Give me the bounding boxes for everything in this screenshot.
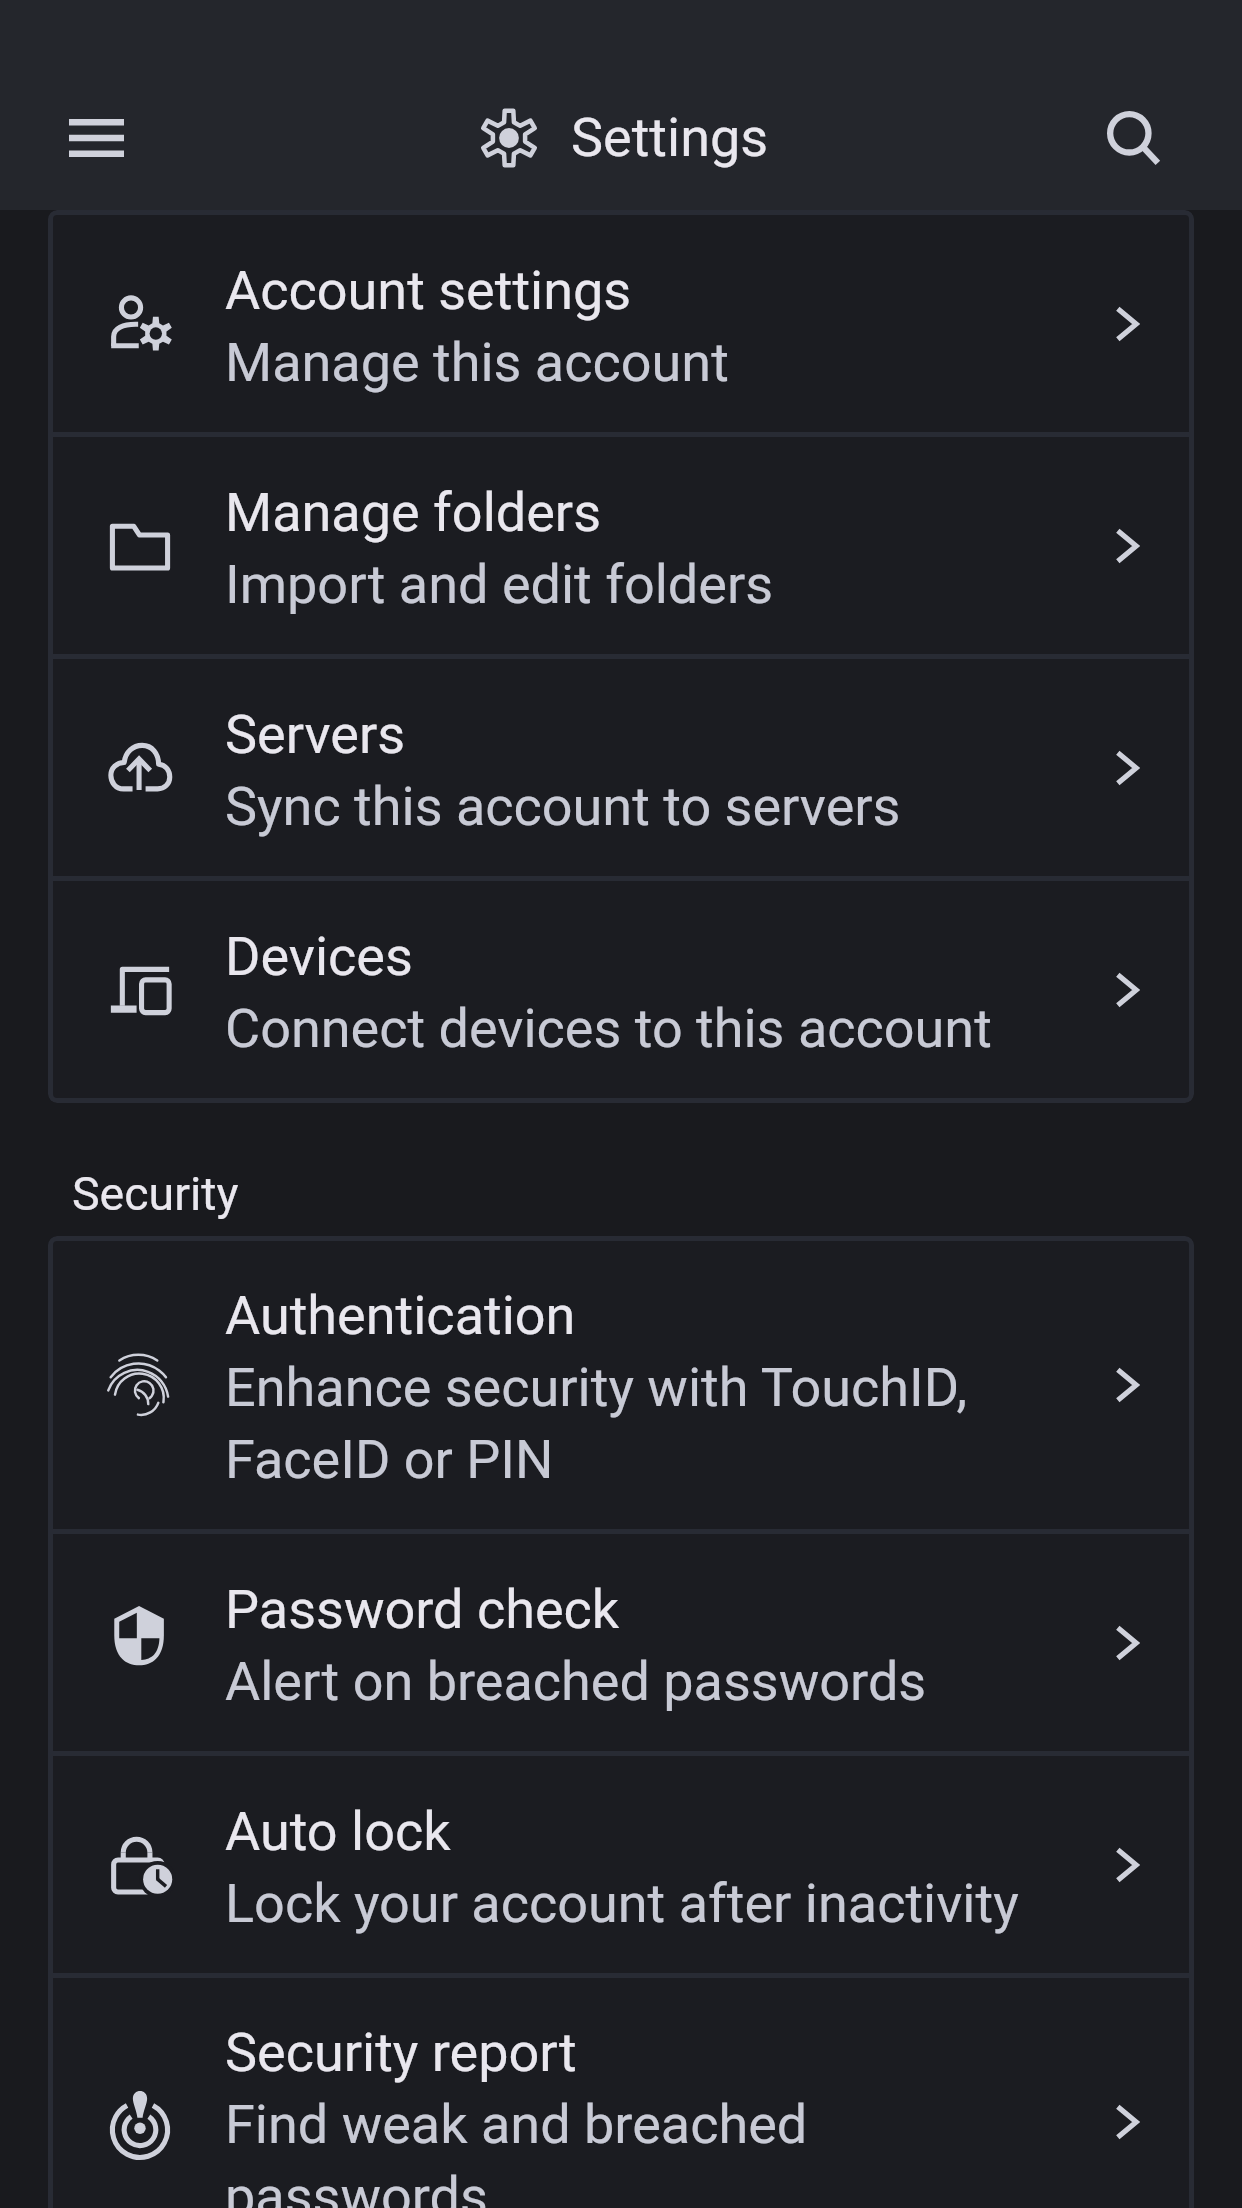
staticText: Password check [225,1571,620,1643]
staticText: Security report [225,2014,577,2086]
staticText: Find weak and breached passwords [225,2086,1045,2208]
button[interactable]: Authentication [53,1241,1189,1529]
button[interactable]: Devices [53,881,1189,1098]
button[interactable]: Security report [53,1978,1189,2208]
staticText: Authentication [225,1277,576,1349]
button[interactable]: Password check [53,1534,1189,1751]
staticText: Account settings [225,252,632,324]
staticText: Connect devices to this account [225,990,992,1062]
button[interactable]: Servers [53,659,1189,876]
staticText: Lock your account after inactivity [225,1865,1019,1937]
staticText: Devices [225,918,413,990]
staticText: Security [72,1167,239,1221]
staticText: Alert on breached passwords [225,1643,927,1715]
staticText: Servers [225,696,406,768]
button[interactable]: Auto lock [53,1756,1189,1973]
staticText: Import and edit folders [225,546,774,618]
button[interactable]: Menu [41,83,151,193]
staticText: Enhance security with TouchID, FaceID or… [225,1349,1045,1493]
staticText: Manage folders [225,474,602,546]
button[interactable]: Manage folders [53,437,1189,654]
staticText: Manage this account [225,324,729,396]
staticText: Sync this account to servers [225,768,901,840]
button[interactable]: Search [1079,83,1189,193]
staticText: Auto lock [225,1793,451,1865]
staticText: Settings [571,107,769,169]
button[interactable]: Account settings [53,215,1189,432]
